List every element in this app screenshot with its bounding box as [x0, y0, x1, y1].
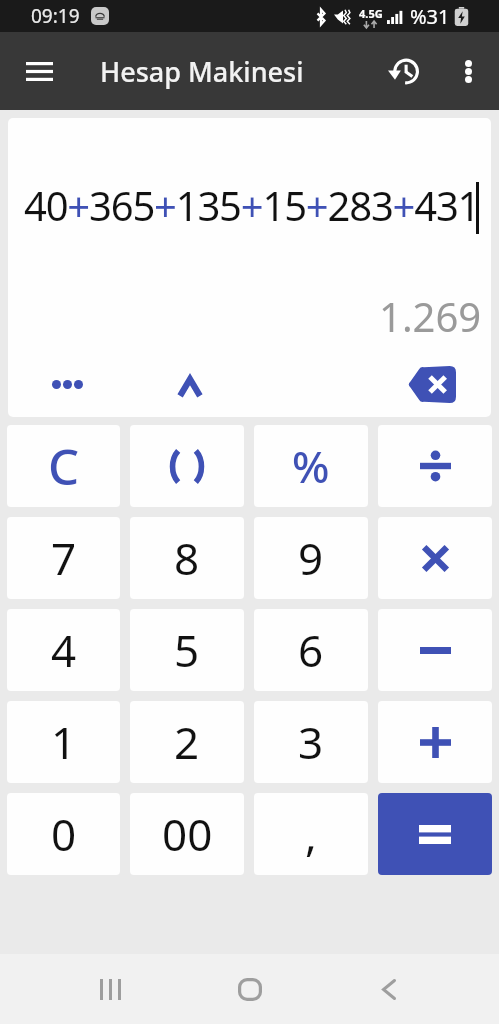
- button[interactable]: Subtract: [378, 609, 492, 691]
- staticText: %: [292, 436, 330, 496]
- staticText: 7: [51, 528, 77, 588]
- staticText: 4.5G: [359, 6, 383, 21]
- button[interactable]: Home: [220, 959, 280, 1019]
- staticText: 8: [174, 528, 200, 588]
- button[interactable]: More: [38, 362, 96, 406]
- button[interactable]: 9: [254, 517, 368, 599]
- button[interactable]: 8: [130, 517, 244, 599]
- staticText: 5: [174, 620, 200, 680]
- button[interactable]: 0: [7, 793, 120, 875]
- button[interactable]: More options: [437, 32, 499, 110]
- button[interactable]: Divide: [378, 425, 492, 507]
- staticText: %31: [410, 3, 450, 30]
- staticText: 9: [298, 528, 324, 588]
- button[interactable]: 4: [7, 609, 120, 691]
- button[interactable]: ,: [254, 793, 368, 875]
- button[interactable]: 00: [130, 793, 244, 875]
- button[interactable]: Equals: [378, 793, 492, 875]
- button[interactable]: Multiply: [378, 517, 492, 599]
- button[interactable]: Parentheses: [130, 425, 244, 507]
- button[interactable]: 7: [7, 517, 120, 599]
- button[interactable]: 1: [7, 701, 120, 783]
- staticText: 09:19: [31, 3, 80, 29]
- button[interactable]: 5: [130, 609, 244, 691]
- button[interactable]: Recent apps: [80, 959, 140, 1019]
- button[interactable]: Add: [378, 701, 492, 783]
- button[interactable]: Expand: [162, 365, 218, 409]
- staticText: 40+365+135+15+283+431: [24, 178, 480, 232]
- staticText: 1: [51, 712, 77, 772]
- staticText: 3: [298, 712, 324, 772]
- staticText: 2: [174, 712, 200, 772]
- staticText: 1.269: [379, 289, 482, 343]
- staticText: Hesap Makinesi: [100, 53, 304, 90]
- button[interactable]: Menu: [0, 32, 78, 110]
- button[interactable]: 3: [254, 701, 368, 783]
- button[interactable]: %: [254, 425, 368, 507]
- button[interactable]: 2: [130, 701, 244, 783]
- button[interactable]: 6: [254, 609, 368, 691]
- staticText: 00: [162, 804, 213, 864]
- staticText: 6: [298, 620, 324, 680]
- button[interactable]: History: [369, 32, 437, 110]
- button[interactable]: Backspace: [403, 358, 459, 410]
- staticText: 4: [51, 620, 77, 680]
- staticText: 0: [51, 804, 77, 864]
- staticText: ,: [305, 804, 317, 864]
- button[interactable]: C: [7, 425, 120, 507]
- button[interactable]: Back: [359, 959, 419, 1019]
- staticText: C: [48, 433, 80, 500]
